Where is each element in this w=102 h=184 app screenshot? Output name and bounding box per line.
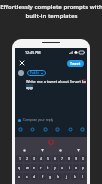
button[interactable]: Poll — [42, 126, 48, 132]
staticText: s — [26, 174, 28, 179]
button[interactable]: Tweet — [67, 60, 84, 67]
button[interactable]: f — [39, 173, 46, 180]
staticText: o — [75, 165, 78, 170]
button[interactable]: 7 — [59, 155, 65, 162]
button[interactable]: suggestion 1 — [15, 147, 33, 154]
button[interactable]: 8 — [66, 155, 72, 162]
staticText: g — [49, 174, 52, 179]
staticText: r — [40, 165, 42, 170]
staticText: 3 — [33, 156, 35, 161]
button[interactable]: Location — [67, 126, 73, 132]
button[interactable]: Photos — [17, 126, 23, 132]
button[interactable]: j — [63, 173, 70, 180]
button[interactable]: Emoji — [54, 126, 60, 132]
button[interactable]: Close — [18, 59, 26, 67]
button[interactable]: 1 — [16, 155, 23, 162]
staticText: 8 — [68, 156, 70, 161]
button[interactable]: i — [66, 164, 72, 171]
staticText: 9 — [75, 156, 77, 161]
button[interactable]: Schedule — [79, 126, 85, 132]
button[interactable]: s — [23, 173, 30, 180]
staticText: j — [66, 174, 67, 179]
staticText: 7 — [61, 156, 63, 161]
button[interactable]: y — [52, 164, 58, 171]
staticText: h — [57, 174, 60, 179]
staticText: p — [82, 165, 85, 170]
button[interactable]: t — [45, 164, 51, 171]
button[interactable]: 3 — [31, 155, 37, 162]
staticText: 12:45 PM — [25, 50, 41, 55]
button[interactable]: suggestion 2 — [33, 147, 51, 154]
button[interactable]: p — [80, 164, 86, 171]
button[interactable]: e — [31, 164, 37, 171]
staticText: y — [54, 165, 56, 170]
staticText: 0 — [82, 156, 84, 161]
staticText: Tweet — [70, 61, 81, 66]
button[interactable]: 4 — [38, 155, 44, 162]
button[interactable]: suggestion 4 — [69, 147, 87, 154]
staticText: a — [18, 174, 20, 179]
staticText: d — [33, 174, 36, 179]
staticText: Write me a tweet about Smart keyb app — [26, 79, 86, 90]
staticText: i — [69, 165, 70, 170]
staticText: 5 — [47, 156, 49, 161]
button[interactable]: k — [71, 173, 78, 180]
staticText: 1 — [19, 156, 21, 161]
button[interactable]: o — [73, 164, 79, 171]
button[interactable]: q — [16, 164, 23, 171]
button[interactable]: a — [16, 173, 22, 180]
staticText: 6 — [54, 156, 56, 161]
staticText: l — [82, 174, 83, 179]
button[interactable]: h — [55, 173, 62, 180]
button[interactable]: Public — [27, 70, 46, 76]
button[interactable]: 5 — [45, 155, 51, 162]
staticText: f — [42, 174, 44, 179]
staticText: k — [74, 174, 76, 179]
button[interactable]: r — [38, 164, 44, 171]
staticText: 4 — [40, 156, 42, 161]
staticText: q — [18, 165, 21, 170]
staticText: Compose your reply — [23, 118, 54, 122]
button[interactable]: 6 — [52, 155, 58, 162]
staticText: w — [26, 165, 29, 170]
button[interactable]: u — [59, 164, 65, 171]
staticText: e — [33, 165, 35, 170]
button[interactable]: 9 — [73, 155, 79, 162]
staticText: u — [61, 165, 64, 170]
staticText: Effortlessly complete prompts with built… — [0, 3, 102, 19]
button[interactable]: 2 — [24, 155, 30, 162]
button[interactable]: 0 — [80, 155, 86, 162]
button[interactable]: w — [24, 164, 30, 171]
button[interactable]: d — [31, 173, 38, 180]
button[interactable]: suggestion 3 — [51, 147, 69, 154]
button[interactable]: GIF — [29, 126, 35, 132]
staticText: 2 — [26, 156, 28, 161]
staticText: Public — [30, 71, 40, 75]
staticText: t — [47, 165, 49, 170]
button[interactable]: g — [47, 173, 54, 180]
button[interactable]: l — [79, 173, 86, 180]
